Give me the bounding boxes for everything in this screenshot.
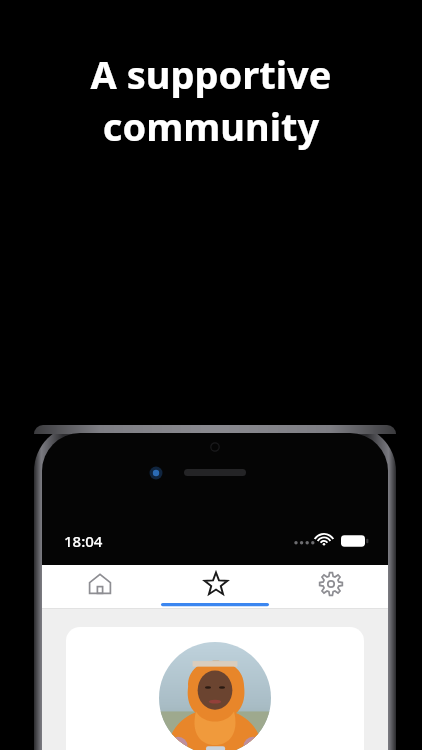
button[interactable]: Home — [42, 565, 158, 603]
button[interactable] — [66, 627, 364, 750]
button[interactable]: Favourites — [158, 565, 273, 603]
staticText: 18:04 — [64, 531, 103, 551]
staticText: A supportive community — [24, 48, 398, 152]
button[interactable]: Settings — [273, 565, 388, 603]
